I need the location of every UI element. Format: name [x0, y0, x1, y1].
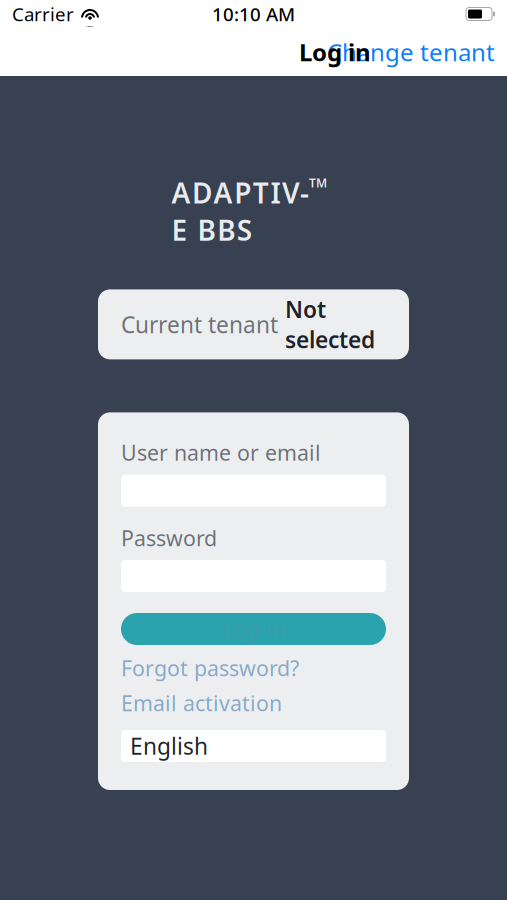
staticText: Current tenant	[121, 309, 278, 339]
button[interactable]: Change tenant	[315, 26, 507, 78]
button[interactable]: English	[121, 728, 386, 764]
staticText: Email activation	[121, 689, 282, 717]
staticText: Forgot password?	[121, 654, 299, 682]
staticText: Carrier	[12, 2, 74, 26]
staticText: Log in	[299, 36, 371, 68]
staticText: English	[130, 731, 208, 761]
staticText: TM	[309, 175, 327, 191]
staticText: 10:10 AM	[212, 2, 295, 26]
staticText: Log in	[222, 615, 284, 643]
staticText: ADAPTIVE BBS	[171, 174, 309, 248]
button[interactable]: Current tenant	[98, 289, 409, 359]
staticText: User name or email	[121, 438, 321, 467]
staticText: Password	[121, 524, 217, 552]
button[interactable]: Forgot password?	[121, 656, 386, 680]
staticText: Not selected	[285, 294, 375, 354]
staticText: Change tenant	[327, 36, 495, 68]
button[interactable]: Log in	[121, 613, 386, 645]
button[interactable]: Email activation	[121, 691, 386, 715]
